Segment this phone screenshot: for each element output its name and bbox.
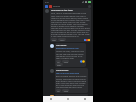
button[interactable]: Share <box>58 38 66 41</box>
button[interactable]: Yes <box>56 60 61 63</box>
staticText: Sure, here is a detailed overview of the… <box>51 12 90 37</box>
staticText: Comparison <box>56 69 69 72</box>
staticText: More <box>64 61 68 63</box>
staticText: Share <box>60 39 65 41</box>
button[interactable]: Profile <box>88 5 91 8</box>
button[interactable]: Copy <box>51 38 57 41</box>
staticText: You asked <box>56 44 67 47</box>
button[interactable]: More <box>62 89 69 92</box>
button[interactable]: Yes <box>56 89 61 92</box>
button[interactable]: More <box>62 60 69 63</box>
staticText: Thanks for that, could you also tell me … <box>56 50 85 59</box>
staticText: Overview of the topic <box>51 9 73 12</box>
staticText: Reply <box>57 64 62 66</box>
staticText: Gemini <box>53 5 61 8</box>
staticText: developers.example.com <box>56 47 79 50</box>
staticText: Copy <box>52 39 56 41</box>
button[interactable]: Menu <box>45 5 48 8</box>
staticText: Yes <box>57 90 60 92</box>
staticText: see the pricing table here <box>56 72 80 75</box>
staticText: More <box>64 90 68 92</box>
button[interactable]: New chat <box>49 5 52 8</box>
button[interactable]: Reply <box>56 63 63 66</box>
staticText: Both of these options are broadly simila… <box>56 75 87 88</box>
staticText: 9:41 <box>45 1 50 4</box>
staticText: Yes <box>57 61 60 63</box>
